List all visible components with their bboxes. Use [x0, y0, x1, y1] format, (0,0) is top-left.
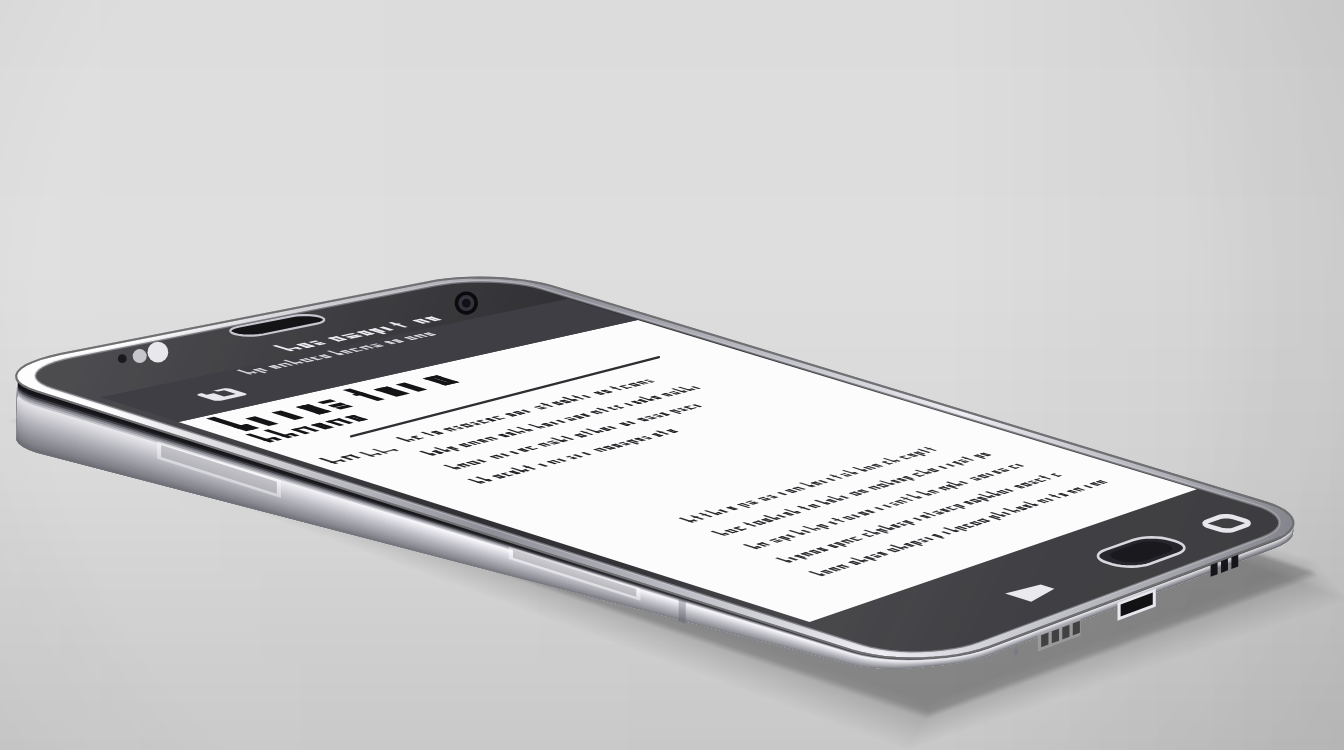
button[interactable]: Smartphone displaying a document page: [0, 0, 1344, 750]
